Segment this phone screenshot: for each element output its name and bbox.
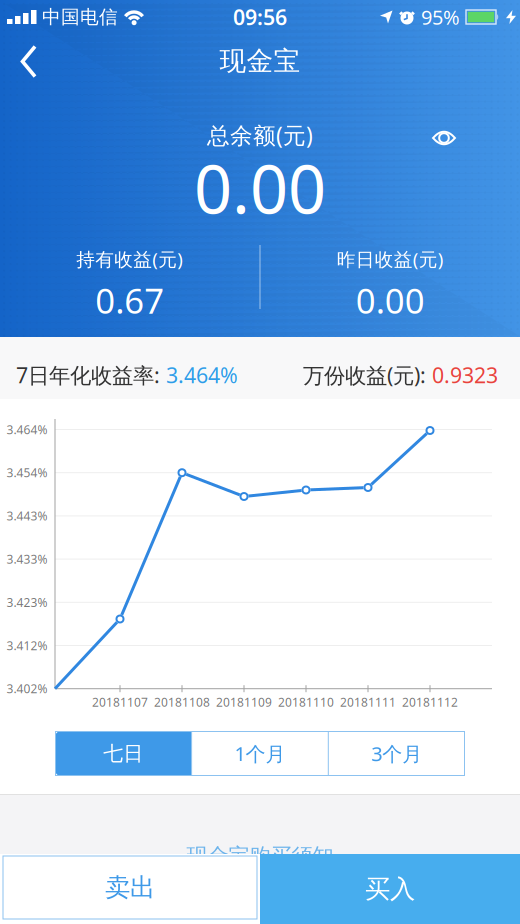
staticText: 买入 <box>365 873 415 904</box>
staticText: 0.9323 <box>432 361 498 389</box>
staticText: 七日 <box>103 741 143 766</box>
staticText: 95% <box>421 4 460 30</box>
staticText: 20181109 <box>216 694 272 710</box>
staticText: 09:56 <box>233 3 287 31</box>
staticText: 现金宝购买须知 <box>186 843 333 869</box>
button[interactable]: 卖出 <box>0 854 260 924</box>
staticText: 3.423% <box>6 594 47 610</box>
button[interactable]: Hide balance <box>426 123 462 153</box>
staticText: 20181112 <box>402 694 458 710</box>
staticText: 3.464% <box>166 361 238 389</box>
button[interactable]: 买入 <box>260 854 520 924</box>
staticText: 0.00 <box>356 277 425 323</box>
staticText: 20181108 <box>154 694 210 710</box>
staticText: 7日年化收益率: <box>16 361 166 389</box>
staticText: 0.67 <box>95 277 164 323</box>
staticText: 3.464% <box>6 421 47 437</box>
staticText: 20181110 <box>278 694 334 710</box>
staticText: 万份收益(元): <box>303 361 432 389</box>
button[interactable]: 1个月 <box>192 731 328 776</box>
staticText: 3.454% <box>6 465 47 481</box>
staticText: 3.443% <box>6 508 47 524</box>
staticText: 中国电信 <box>42 5 118 28</box>
button[interactable]: 3个月 <box>328 731 465 776</box>
staticText: 昨日收益(元) <box>337 247 444 271</box>
staticText: 3.433% <box>6 551 47 567</box>
staticText: 20181111 <box>340 694 396 710</box>
staticText: 总余额(元) <box>207 120 313 150</box>
staticText: 持有收益(元) <box>76 247 183 271</box>
staticText: 0.00 <box>194 144 326 232</box>
staticText: 3.412% <box>6 637 47 653</box>
button[interactable]: 七日 <box>55 731 192 776</box>
staticText: 1个月 <box>234 740 285 767</box>
staticText: 3.402% <box>6 681 47 697</box>
button[interactable]: Back <box>7 40 51 84</box>
staticText: 20181107 <box>92 694 148 710</box>
staticText: 卖出 <box>105 872 155 903</box>
staticText: 3个月 <box>371 740 422 767</box>
staticText: 现金宝 <box>219 45 300 77</box>
button[interactable]: 现金宝购买须知 <box>186 843 333 869</box>
